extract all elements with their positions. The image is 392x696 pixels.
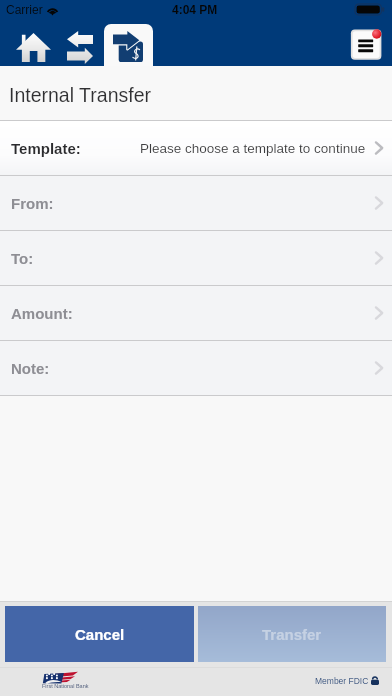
staticText: Cancel xyxy=(75,626,125,643)
button[interactable]: To: xyxy=(0,231,392,285)
button[interactable]: Amount: xyxy=(0,286,392,340)
staticText: Template: xyxy=(11,140,81,157)
button[interactable]: Note: xyxy=(0,341,392,395)
staticText: 4:04 PM xyxy=(172,3,218,16)
button[interactable]: Template: xyxy=(0,121,392,175)
button[interactable]: Transfers xyxy=(56,24,104,66)
staticText: Carrier xyxy=(6,3,43,16)
staticText: From: xyxy=(11,195,54,212)
staticText: First National Bank xyxy=(42,683,89,689)
staticText: To: xyxy=(11,250,34,267)
staticText: Amount: xyxy=(11,305,73,322)
button[interactable]: Cancel xyxy=(5,606,194,662)
staticText: Internal Transfer xyxy=(9,84,151,106)
staticText: Note: xyxy=(11,360,50,377)
button[interactable]: Menu xyxy=(344,24,390,66)
staticText: Member FDIC xyxy=(315,676,369,685)
button[interactable]: Home xyxy=(4,24,56,66)
button[interactable]: Transfer xyxy=(198,606,386,662)
staticText: Transfer xyxy=(262,626,322,643)
staticText: Please choose a template to continue xyxy=(140,141,366,156)
button[interactable]: From: xyxy=(0,176,392,230)
button[interactable]: Internal Transfer tab xyxy=(104,24,153,66)
